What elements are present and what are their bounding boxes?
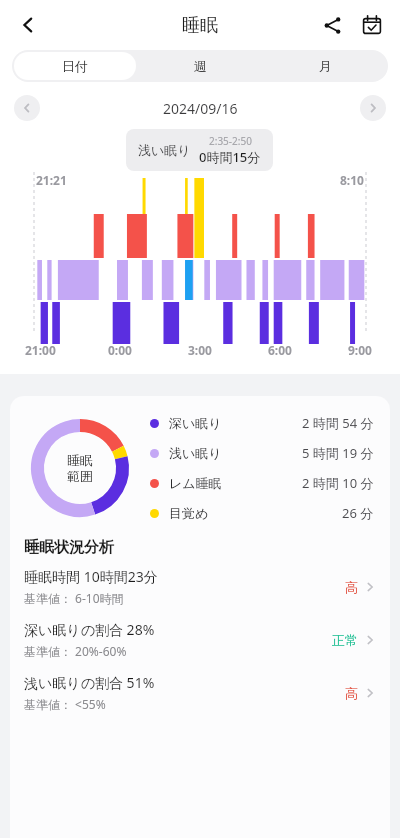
staticText: 0:00 — [108, 342, 132, 358]
button[interactable]: 浅い眠り — [150, 438, 374, 468]
staticText: 睡眠 — [182, 14, 218, 37]
staticText: 21:21 — [36, 172, 67, 188]
staticText: 睡眠時間 10時間23分 — [24, 567, 158, 586]
button[interactable]: 目覚め — [150, 498, 374, 528]
staticText: 0時間15分 — [199, 148, 261, 166]
button[interactable]: 深い眠りの割合 28% — [10, 620, 390, 659]
staticText: 6:00 — [268, 342, 292, 358]
button[interactable]: 週 — [140, 52, 261, 80]
staticText: レム睡眠 — [169, 475, 222, 491]
staticText: 浅い眠り — [169, 445, 222, 461]
staticText: 日付 — [62, 58, 88, 74]
staticText: 2 時間 10 分 — [302, 474, 374, 492]
staticText: 深い眠り — [169, 415, 222, 431]
staticText: 2024/09/16 — [163, 99, 238, 118]
staticText: 浅い眠りの割合 51% — [24, 673, 155, 692]
staticText: 2 時間 54 分 — [302, 414, 374, 432]
staticText: 深い眠りの割合 28% — [24, 620, 155, 639]
staticText: 目覚め — [169, 505, 209, 521]
staticText: 範囲 — [67, 468, 93, 484]
staticText: 3:00 — [188, 342, 212, 358]
staticText: 基準値： <55% — [24, 696, 106, 712]
staticText: 浅い眠り — [138, 142, 191, 158]
staticText: 週 — [194, 58, 207, 74]
button[interactable]: Back — [8, 5, 48, 45]
staticText: 基準値： 6-10時間 — [24, 590, 124, 606]
staticText: 睡眠状況分析 — [24, 538, 114, 557]
staticText: 基準値： 20%-60% — [24, 643, 127, 659]
button[interactable]: 月 — [265, 52, 386, 80]
button[interactable]: Calendar — [354, 7, 390, 43]
staticText: 高 — [345, 685, 358, 701]
staticText: 2:35-2:50 — [209, 134, 252, 148]
button[interactable]: 睡眠時間 10時間23分 — [10, 567, 390, 606]
button[interactable]: Previous day — [14, 95, 40, 121]
staticText: 月 — [319, 58, 332, 74]
button[interactable]: レム睡眠 — [150, 468, 374, 498]
staticText: 26 分 — [342, 504, 374, 522]
staticText: 正常 — [332, 632, 358, 648]
button[interactable]: Next day — [360, 95, 386, 121]
staticText: 5 時間 19 分 — [302, 444, 374, 462]
staticText: 睡眠 — [67, 452, 93, 468]
button[interactable]: 浅い眠りの割合 51% — [10, 673, 390, 712]
staticText: 21:00 — [25, 342, 56, 358]
button[interactable]: Share — [314, 7, 350, 43]
staticText: 高 — [345, 579, 358, 595]
button[interactable]: 深い眠り — [150, 408, 374, 438]
staticText: 9:00 — [348, 342, 372, 358]
staticText: 8:10 — [340, 172, 364, 188]
button[interactable]: 日付 — [14, 52, 136, 80]
